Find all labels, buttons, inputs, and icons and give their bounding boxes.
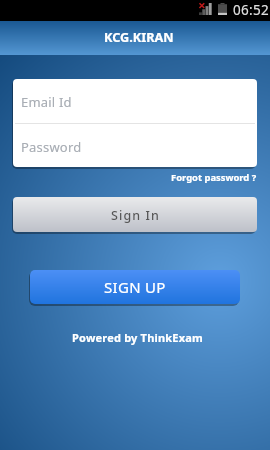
button[interactable]: Forgot password ? xyxy=(171,171,257,184)
staticText: KCG.KIRAN xyxy=(104,28,174,45)
other: Battery xyxy=(218,3,227,15)
staticText: 06:52 xyxy=(233,1,270,19)
staticText: Password xyxy=(21,138,82,156)
staticText: Email Id xyxy=(21,93,72,111)
staticText: Powered by ThinkExam xyxy=(72,330,204,345)
staticText: SIGN UP xyxy=(104,277,166,297)
other: Mobile signal xyxy=(199,3,212,15)
staticText: Sign In xyxy=(111,207,161,224)
button[interactable]: Sign In xyxy=(13,197,257,232)
button[interactable]: Password xyxy=(13,124,257,167)
button[interactable]: SIGN UP xyxy=(30,270,240,304)
button[interactable]: Email Id xyxy=(13,79,257,123)
